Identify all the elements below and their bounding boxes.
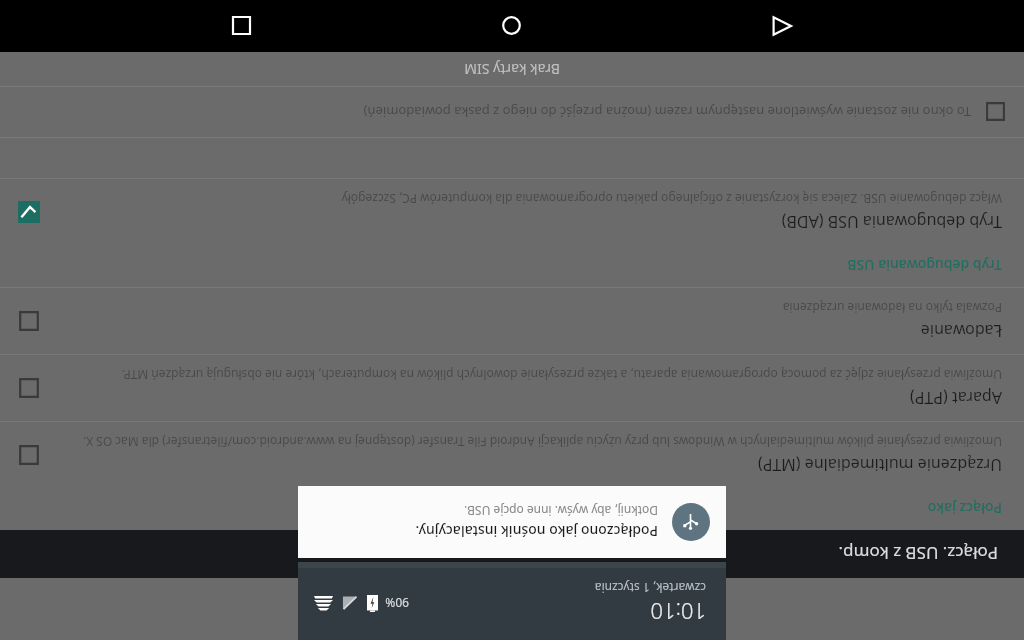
- staticText: Tryb debugowania USB (ADB): [781, 211, 1002, 233]
- staticText: Umożliwia przesyłanie plików multimedial…: [82, 434, 1002, 450]
- staticText: Brak karty SIM: [464, 60, 560, 79]
- staticText: To okno nie zostanie wyświetlone następn…: [363, 103, 971, 121]
- staticText: Tryb debugowania USB: [847, 256, 1002, 275]
- staticText: 10:10: [650, 597, 706, 627]
- staticText: Urządzenie multimedialne (MTP): [757, 454, 1002, 476]
- staticText: Połącz. USB z komp.: [838, 542, 998, 565]
- staticText: Połącz jako: [927, 499, 1002, 518]
- staticText: 90%: [385, 595, 409, 611]
- staticText: Pozwala tylko na ładowanie urządzenia: [782, 300, 1002, 316]
- staticText: Włącz debugowanie USB. Zaleca się korzys…: [341, 191, 1002, 207]
- button[interactable]: Home: [484, 0, 540, 52]
- button[interactable]: Aparat (PTP): [0, 355, 1024, 421]
- button[interactable]: Back: [754, 0, 810, 52]
- button[interactable]: Recent apps: [214, 0, 270, 52]
- staticText: Podłączono jako nośnik instalacyjny.: [415, 522, 658, 541]
- button[interactable]: Urządzenie multimedialne (MTP): [0, 422, 1024, 488]
- staticText: Ładowanie: [920, 320, 1002, 342]
- button[interactable]: Podłączono jako nośnik instalacyjny.: [298, 486, 726, 558]
- staticText: czwartek, 1 stycznia: [594, 580, 706, 596]
- button[interactable]: Ładowanie: [0, 288, 1024, 354]
- staticText: Aparat (PTP): [909, 387, 1002, 409]
- button[interactable]: To okno nie zostanie wyświetlone następn…: [0, 87, 1024, 137]
- button[interactable]: Tryb debugowania USB (ADB): [0, 179, 1024, 245]
- staticText: Dotknij, aby wyśw. inne opcje USB.: [464, 503, 658, 519]
- staticText: Umożliwia przesyłanie zdjęć za pomocą op…: [121, 367, 1002, 383]
